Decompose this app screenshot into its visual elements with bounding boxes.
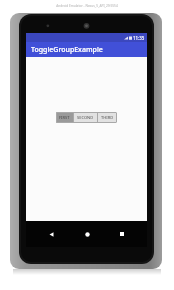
button[interactable]: ToggleGroupExample [26, 42, 147, 57]
staticText: ToggleGroupExample [31, 45, 103, 55]
button[interactable]: THIRD [98, 112, 117, 123]
button[interactable]: Back [40, 223, 62, 245]
staticText: THIRD [101, 115, 114, 120]
staticText: FIRST [59, 115, 70, 120]
button[interactable]: Home [76, 223, 98, 245]
button[interactable]: Recent apps [111, 223, 133, 245]
staticText: 11:35 [133, 35, 145, 41]
staticText: Android Emulator - Nexus_5_API_29:5554 [56, 4, 118, 8]
button[interactable]: FIRST [56, 112, 73, 123]
button[interactable]: SECOND [74, 112, 97, 123]
staticText: SECOND [77, 115, 94, 120]
